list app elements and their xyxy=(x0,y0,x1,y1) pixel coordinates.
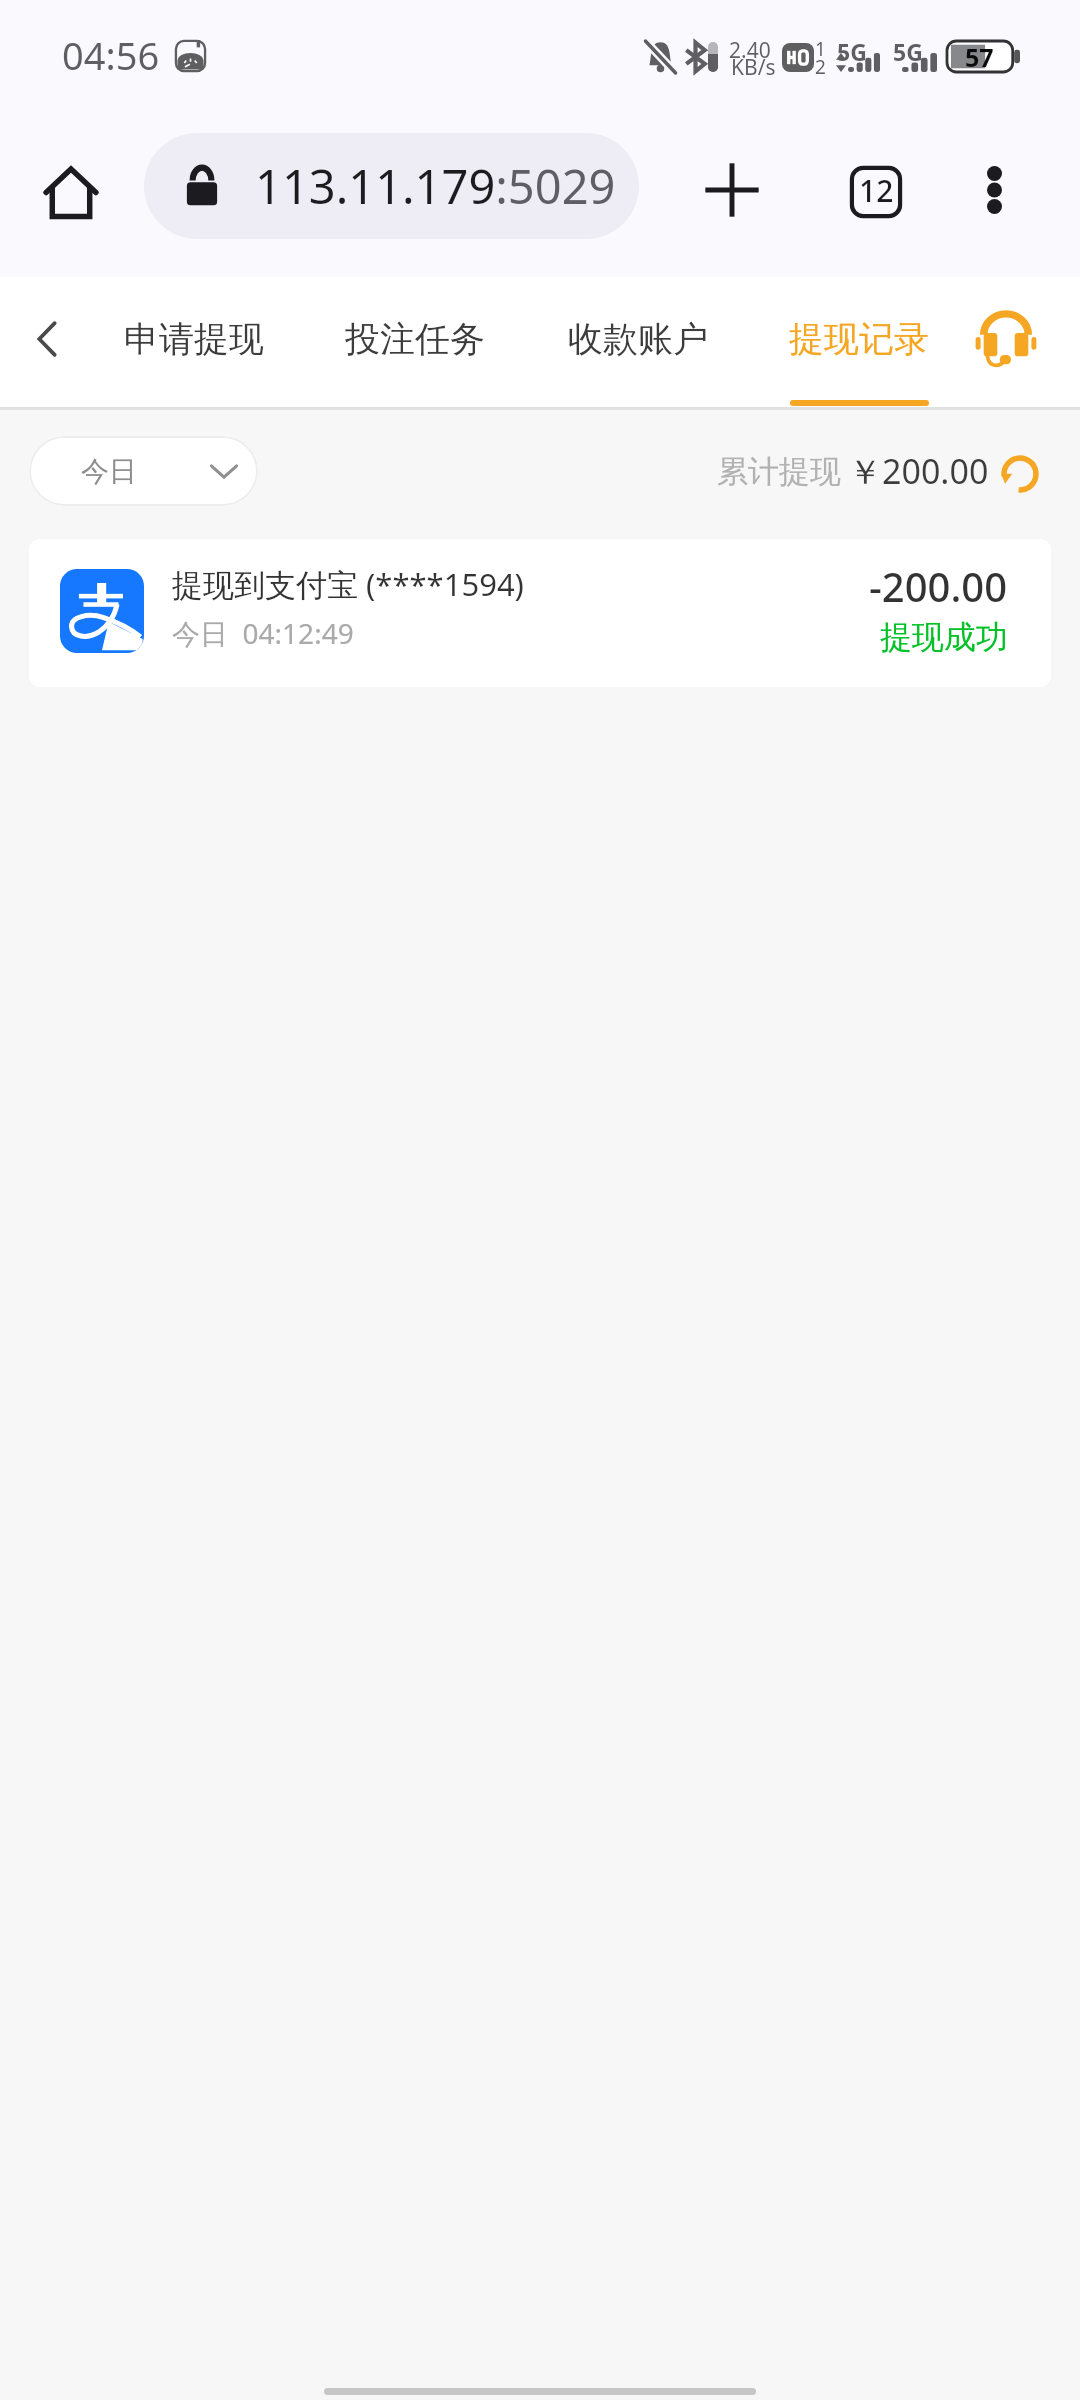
button[interactable]: Customer service xyxy=(972,306,1040,374)
staticText: 投注任务 xyxy=(345,317,485,361)
staticText: 04:56 xyxy=(62,29,160,81)
staticText: 今日 xyxy=(81,454,137,489)
staticText: 12 xyxy=(859,170,894,211)
button[interactable]: New tab xyxy=(690,148,774,232)
button[interactable]: Back xyxy=(11,303,83,375)
button[interactable]: 提现到支付宝 (****1594) xyxy=(29,539,1051,687)
staticText: 113.11.179:5029 xyxy=(255,154,616,218)
button[interactable]: Refresh xyxy=(998,452,1042,496)
staticText: 申请提现 xyxy=(124,317,264,361)
staticText: 2 xyxy=(815,54,826,80)
staticText: 提现成功 xyxy=(880,617,1008,657)
staticText: 提现到支付宝 (****1594) xyxy=(172,563,524,605)
button[interactable]: 投注任务 xyxy=(335,277,495,407)
button[interactable]: More options xyxy=(952,148,1036,232)
button[interactable]: Tabs, 12 open xyxy=(834,148,918,232)
staticText: 5G xyxy=(837,36,867,67)
button[interactable]: 提现记录 xyxy=(779,277,939,407)
staticText: 累计提现 xyxy=(717,452,841,491)
staticText: 57 xyxy=(965,40,994,71)
button[interactable]: 申请提现 xyxy=(114,277,274,407)
staticText: 1 xyxy=(815,36,826,62)
staticText: KB/s xyxy=(731,53,776,82)
staticText: ￥200.00 xyxy=(848,448,989,494)
staticText: 收款账户 xyxy=(568,317,708,361)
button[interactable]: 113.11.179:5029 xyxy=(144,133,639,239)
staticText: 2.40 xyxy=(729,36,771,65)
button[interactable]: Home xyxy=(29,151,113,235)
button[interactable]: 收款账户 xyxy=(558,277,718,407)
button[interactable]: 今日 xyxy=(29,436,258,506)
staticText: -200.00 xyxy=(869,559,1008,613)
staticText: 5G xyxy=(893,36,923,67)
staticText: 提现记录 xyxy=(789,317,929,361)
staticText: 今日 04:12:49 xyxy=(172,614,354,652)
